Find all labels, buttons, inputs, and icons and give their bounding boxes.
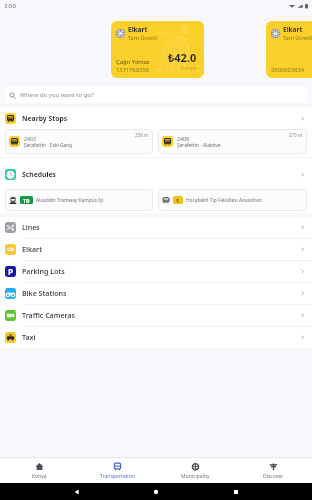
- staticText: Nearby Stops: [22, 114, 68, 123]
- button[interactable]: Elkart: [0, 239, 312, 260]
- button[interactable]: Elkart: [266, 21, 312, 78]
- staticText: 2403: [24, 135, 37, 142]
- button[interactable]: Konya: [0, 458, 78, 483]
- staticText: Alaaddin Tramway Kampüs İçi: [36, 197, 104, 204]
- staticText: Hocafakih Tıp Fakültesi Anasoltan: [186, 197, 262, 204]
- staticText: Şerafettin - Alaköve: [177, 142, 221, 149]
- staticText: Çağrı Yılmaz: [116, 58, 150, 66]
- staticText: Traffic Cameras: [22, 311, 75, 321]
- button[interactable]: Bike Stations: [0, 283, 312, 304]
- button[interactable]: 2409: [158, 129, 307, 154]
- button[interactable]: Nearby Stops: [0, 107, 312, 129]
- button[interactable]: 1: [158, 189, 307, 211]
- staticText: Discover: [263, 473, 284, 480]
- staticText: Tam Ücretli: [283, 34, 312, 41]
- button[interactable]: Discover: [234, 458, 312, 483]
- staticText: Konya: [32, 473, 47, 480]
- staticText: bakiye: [181, 65, 197, 72]
- staticText: Elkart: [22, 245, 42, 255]
- button[interactable]: Municipality: [156, 458, 234, 483]
- staticText: ₺42.0: [168, 50, 197, 65]
- staticText: T0: [23, 197, 30, 204]
- staticText: 3:50: [4, 2, 16, 10]
- staticText: Elkart: [128, 25, 148, 34]
- button[interactable]: Lines: [0, 217, 312, 238]
- staticText: Tam Ücretli: [128, 34, 158, 41]
- button[interactable]: Traffic Cameras: [0, 305, 312, 326]
- staticText: 1: [176, 197, 180, 204]
- staticText: 2409: [177, 135, 190, 142]
- staticText: Taxi: [22, 333, 36, 343]
- staticText: 275 m: [289, 132, 303, 138]
- button[interactable]: Transportation: [78, 458, 156, 483]
- button[interactable]: P: [0, 261, 312, 282]
- staticText: Şerafettin - Eski Garaj: [24, 142, 72, 149]
- staticText: 1371768356: [116, 66, 150, 74]
- button[interactable]: T0: [5, 189, 153, 211]
- staticText: Bike Stations: [22, 289, 67, 299]
- staticText: Where do you want to go?: [20, 91, 94, 99]
- staticText: Elkart: [283, 25, 303, 34]
- staticText: 258 m: [135, 132, 149, 138]
- staticText: Municipality: [181, 473, 210, 480]
- button[interactable]: Where do you want to go?: [5, 87, 307, 103]
- staticText: Transportation: [100, 473, 135, 480]
- button[interactable]: 2403: [5, 129, 153, 154]
- button[interactable]: Elkart: [111, 21, 204, 78]
- staticText: Parking Lots: [22, 267, 65, 277]
- staticText: 2900603634: [271, 66, 305, 74]
- staticText: Lines: [22, 223, 40, 233]
- staticText: Schedules: [22, 170, 56, 179]
- button[interactable]: Schedules: [0, 159, 312, 189]
- button[interactable]: Taxi: [0, 327, 312, 348]
- staticText: P: [8, 266, 13, 277]
